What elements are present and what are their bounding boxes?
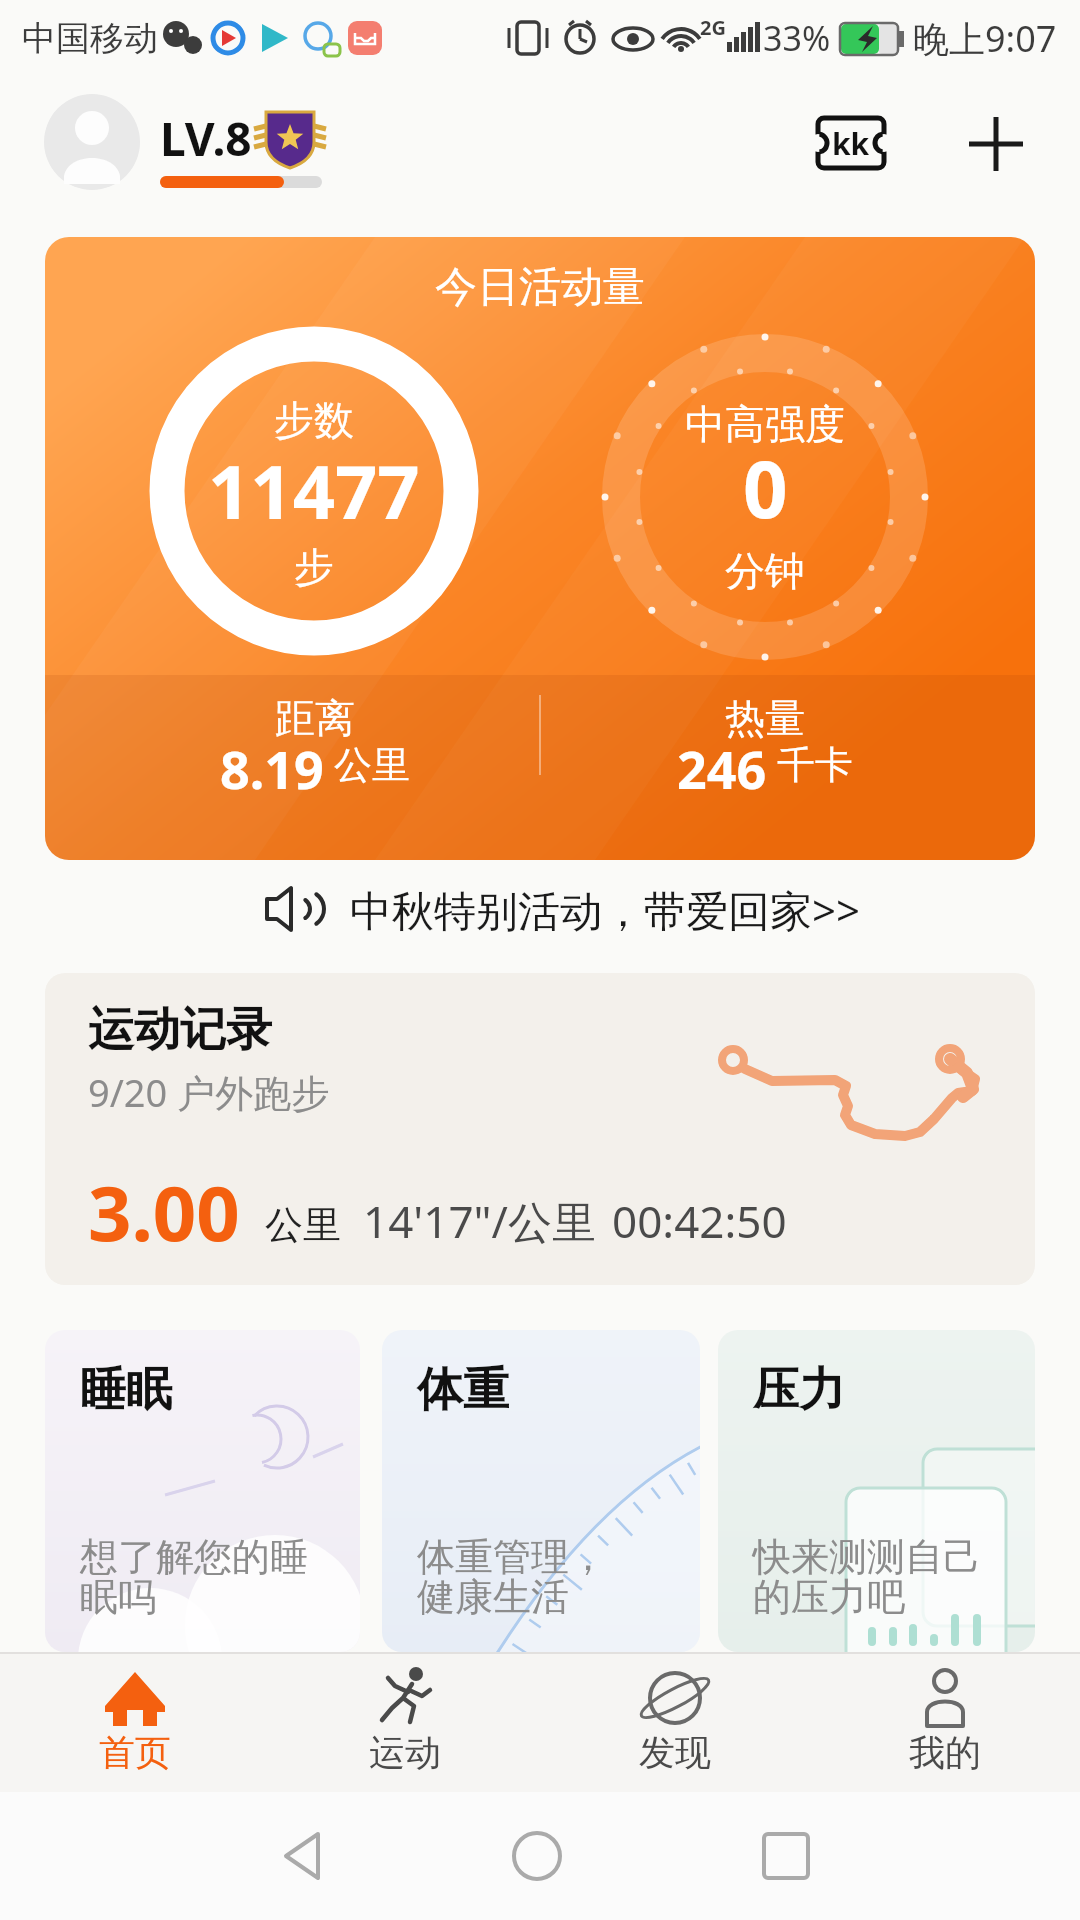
- button[interactable]: [960, 110, 1030, 180]
- staticText: 0: [743, 435, 788, 541]
- staticText: 快来测测自己: [753, 1533, 981, 1581]
- button[interactable]: [44, 94, 140, 190]
- staticText: 健康生活: [417, 1573, 569, 1621]
- button[interactable]: [540, 1652, 810, 1792]
- staticText: 中国移动: [22, 17, 158, 60]
- button[interactable]: [810, 1652, 1080, 1792]
- staticText: kk: [832, 123, 870, 164]
- staticText: 步: [294, 542, 334, 592]
- button[interactable]: 睡眠: [45, 1330, 360, 1652]
- staticText: 想了解您的睡: [80, 1533, 308, 1581]
- staticText: 9/20 户外跑步: [88, 1066, 330, 1118]
- staticText: 2G: [700, 14, 726, 41]
- staticText: 3.00: [88, 1160, 240, 1264]
- staticText: 11477: [208, 440, 420, 541]
- staticText: 体重: [417, 1361, 509, 1419]
- staticText: 千卡: [777, 741, 853, 789]
- staticText: 今日活动量: [435, 261, 645, 314]
- staticText: 运动记录: [88, 1001, 272, 1059]
- button[interactable]: 运动记录: [45, 973, 1035, 1285]
- button[interactable]: [660, 1800, 900, 1912]
- staticText: 运动: [369, 1730, 441, 1775]
- staticText: 公里: [334, 741, 410, 789]
- button[interactable]: [240, 880, 840, 940]
- staticText: 14'17"/公里: [363, 1191, 596, 1251]
- staticText: 8.19: [220, 733, 324, 797]
- staticText: 我的: [909, 1730, 981, 1775]
- staticText: 晚上9:07: [913, 14, 1057, 63]
- button[interactable]: [0, 1652, 270, 1792]
- staticText: 公里: [265, 1201, 341, 1249]
- staticText: 压力: [753, 1361, 845, 1419]
- button[interactable]: [180, 1800, 420, 1912]
- button[interactable]: [270, 1652, 540, 1792]
- staticText: 发现: [639, 1730, 711, 1775]
- button[interactable]: [800, 110, 900, 180]
- staticText: 中秋特别活动，带爱回家>>: [350, 881, 861, 938]
- button[interactable]: 今日活动量: [45, 237, 1035, 860]
- staticText: 体重管理，: [417, 1533, 607, 1581]
- staticText: 距离: [275, 693, 355, 743]
- button[interactable]: [420, 1800, 660, 1912]
- button[interactable]: 压力: [718, 1330, 1035, 1652]
- staticText: 分钟: [725, 546, 805, 596]
- staticText: 首页: [99, 1730, 171, 1775]
- staticText: 的压力吧: [753, 1573, 905, 1621]
- staticText: LV.8: [160, 107, 252, 170]
- staticText: 33%: [763, 15, 831, 61]
- staticText: 眠吗: [80, 1573, 156, 1621]
- staticText: 热量: [725, 693, 805, 743]
- staticText: 步数: [274, 395, 354, 445]
- staticText: 00:42:50: [612, 1191, 787, 1251]
- staticText: 睡眠: [80, 1361, 172, 1419]
- staticText: 246: [677, 733, 767, 797]
- button[interactable]: 体重: [382, 1330, 700, 1652]
- staticText: 中高强度: [685, 399, 845, 449]
